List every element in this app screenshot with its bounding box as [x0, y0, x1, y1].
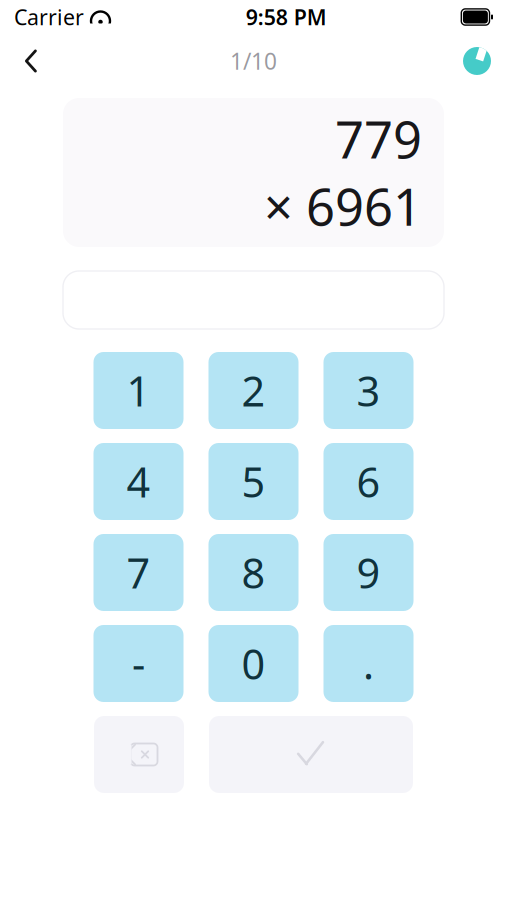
button[interactable]: Progress [455, 39, 499, 83]
staticText: 3 [356, 363, 380, 418]
staticText: 779 [335, 105, 422, 172]
staticText: 1 [126, 363, 150, 418]
staticText: 5 [241, 454, 265, 509]
staticText: 7 [126, 545, 150, 600]
button[interactable]: 4 [93, 443, 183, 520]
button[interactable]: . [323, 625, 413, 702]
button[interactable]: 2 [208, 352, 298, 429]
staticText: 9 [356, 545, 380, 600]
staticText: 1/10 [230, 46, 277, 76]
staticText: 8 [241, 545, 265, 600]
staticText: 9:58 PM [246, 3, 327, 31]
staticText: . [363, 636, 374, 691]
staticText: 6 [356, 454, 380, 509]
staticText: Carrier [14, 3, 84, 31]
staticText: 4 [126, 454, 150, 509]
button[interactable]: 0 [208, 625, 298, 702]
button[interactable]: 7 [93, 534, 183, 611]
button[interactable]: - [93, 625, 183, 702]
button[interactable]: 5 [208, 443, 298, 520]
button[interactable]: 6 [323, 443, 413, 520]
button[interactable]: 3 [323, 352, 413, 429]
button[interactable]: 1 [93, 352, 183, 429]
button[interactable]: 8 [208, 534, 298, 611]
button[interactable]: Back [8, 39, 54, 83]
staticText: 2 [241, 363, 265, 418]
staticText: 0 [241, 636, 265, 691]
button[interactable]: Delete [94, 716, 184, 793]
staticText: - [132, 636, 145, 691]
staticText: × 6961 [264, 172, 422, 240]
button[interactable]: 9 [323, 534, 413, 611]
